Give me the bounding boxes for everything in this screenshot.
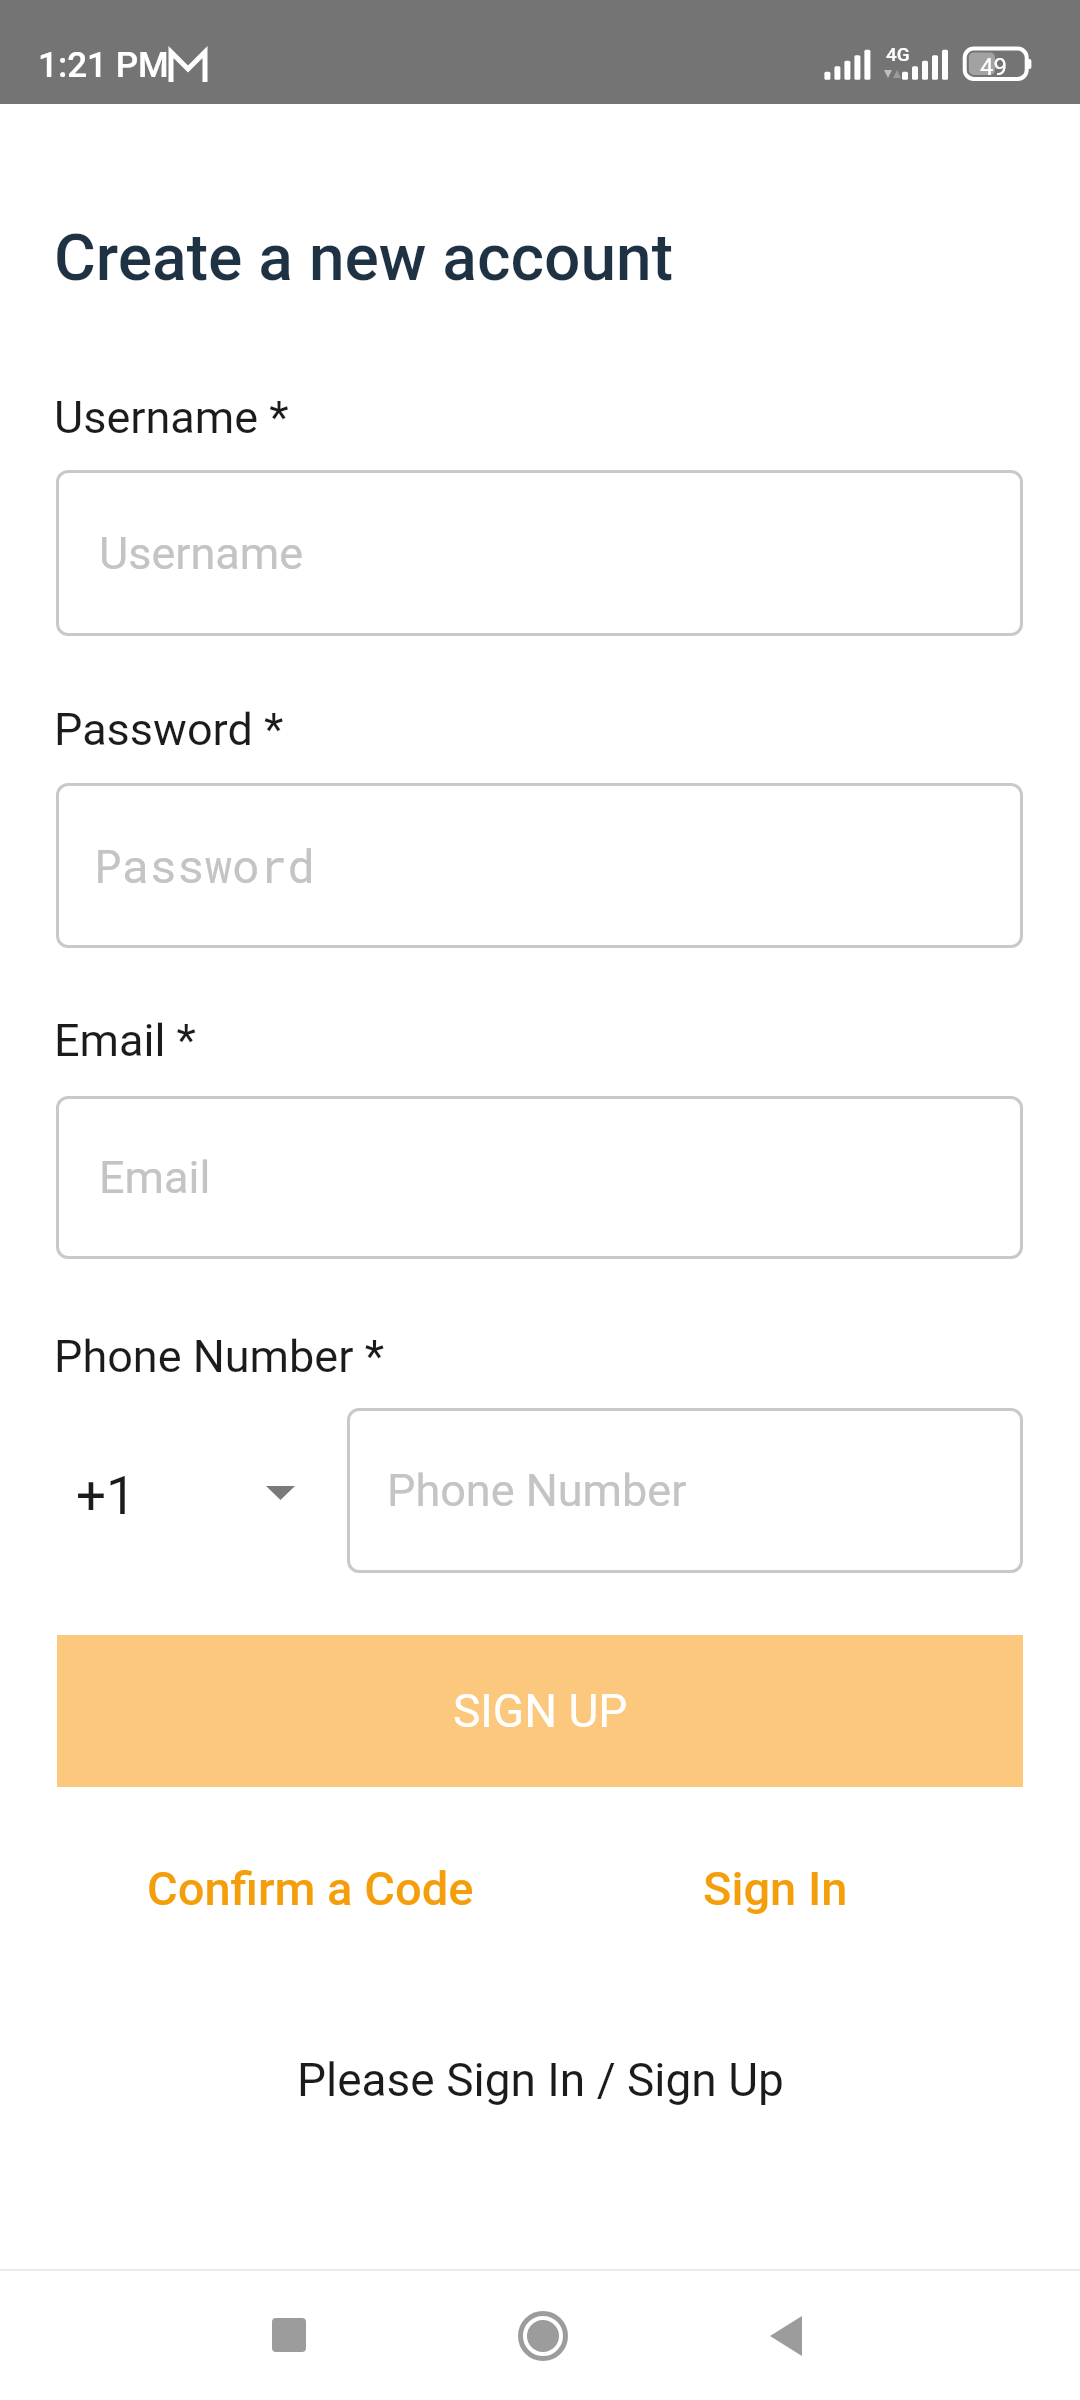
staticText: 4G: [886, 43, 910, 65]
button[interactable]: Sign In: [683, 1841, 868, 1936]
staticText: Phone Number: [387, 1464, 687, 1517]
button[interactable]: [509, 2302, 577, 2370]
staticText: +1: [76, 1465, 136, 1527]
button[interactable]: [752, 2302, 820, 2370]
staticText: Create a new account: [54, 221, 673, 296]
button[interactable]: [255, 2301, 323, 2369]
staticText: Email: [99, 1151, 211, 1204]
staticText: SIGN UP: [453, 1684, 628, 1738]
button[interactable]: SIGN UP: [57, 1635, 1023, 1787]
staticText: Sign In: [703, 1861, 848, 1916]
staticText: Please Sign In / Sign Up: [297, 2053, 784, 2107]
staticText: Phone Number *: [54, 1330, 385, 1383]
button[interactable]: Phone Number: [347, 1408, 1023, 1573]
staticText: Email *: [54, 1014, 196, 1067]
staticText: 1:21 PM: [38, 45, 169, 86]
button[interactable]: Confirm a Code: [127, 1841, 494, 1936]
staticText: Password *: [54, 703, 284, 756]
button[interactable]: Username: [56, 470, 1023, 636]
staticText: Password: [94, 835, 315, 896]
staticText: Username *: [54, 391, 289, 444]
staticText: 49: [980, 53, 1007, 81]
button[interactable]: Password: [56, 783, 1023, 948]
staticText: Username: [99, 527, 304, 580]
staticText: Confirm a Code: [147, 1861, 474, 1916]
button[interactable]: +1: [57, 1435, 307, 1550]
button[interactable]: Email: [56, 1096, 1023, 1259]
